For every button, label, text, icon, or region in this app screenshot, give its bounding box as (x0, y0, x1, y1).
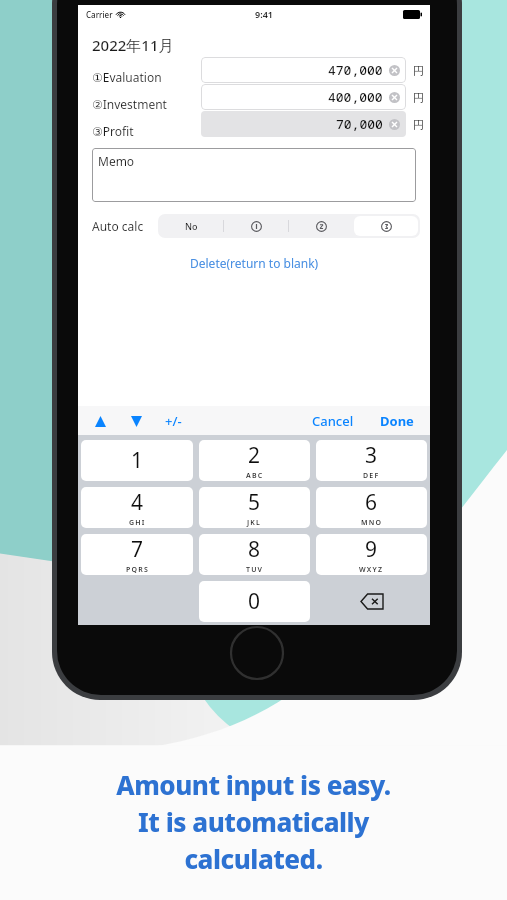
staticText: No (185, 220, 198, 232)
staticText: 円 (413, 64, 424, 78)
button[interactable]: Auto calc option 1 (224, 216, 288, 236)
button[interactable]: Previous field (90, 411, 110, 431)
staticText: 円 (413, 118, 424, 132)
button[interactable]: Home (229, 625, 285, 681)
staticText: DEF (363, 471, 380, 481)
button[interactable]: Delete(return to blank) (182, 252, 327, 274)
staticText: Delete(return to blank) (190, 255, 319, 271)
button[interactable]: Clear (389, 119, 400, 130)
staticText: 2022年11月 (92, 35, 174, 55)
button[interactable]: Memo (92, 148, 416, 202)
staticText: calculated. (184, 841, 323, 876)
staticText: 5 (248, 488, 261, 517)
staticText: 8 (248, 535, 261, 564)
button[interactable]: 9 (316, 534, 427, 575)
button[interactable]: Auto calc option 3 (354, 216, 418, 236)
button[interactable]: Done (376, 412, 418, 430)
staticText: ③Profit (92, 123, 134, 139)
staticText: 0 (248, 587, 261, 616)
staticText: ABC (246, 471, 264, 481)
button[interactable]: 7 (81, 534, 193, 575)
staticText: ①Evaluation (92, 69, 162, 85)
staticText: TUV (246, 565, 264, 575)
staticText: Amount input is easy. (116, 767, 391, 802)
button[interactable]: 400,000 (201, 84, 406, 110)
staticText: +/- (165, 412, 182, 430)
staticText: 9:41 (255, 8, 273, 20)
staticText: 400,000 (328, 88, 383, 106)
staticText: 7 (131, 535, 144, 564)
staticText: 4 (131, 488, 144, 517)
button[interactable]: 8 (199, 534, 310, 575)
staticText: WXYZ (359, 565, 384, 575)
button[interactable]: 2 (199, 440, 310, 481)
button[interactable]: Delete (313, 578, 430, 625)
button[interactable]: 4 (81, 487, 193, 528)
staticText: GHI (129, 518, 146, 528)
staticText: 2 (248, 441, 261, 470)
staticText: 70,000 (336, 115, 383, 133)
button[interactable]: 470,000 (201, 57, 406, 83)
staticText: MNO (361, 518, 383, 528)
button[interactable]: Cancel (308, 412, 358, 430)
staticText: 9 (365, 535, 378, 564)
staticText: 6 (365, 488, 378, 517)
button[interactable]: 70,000 (201, 111, 406, 137)
button[interactable]: 3 (316, 440, 427, 481)
button[interactable]: Next field (126, 411, 146, 431)
button[interactable]: Clear (389, 92, 400, 103)
button[interactable]: 1 (81, 440, 193, 481)
button[interactable]: Clear (389, 65, 400, 76)
staticText: PQRS (126, 565, 149, 575)
button[interactable]: 6 (316, 487, 427, 528)
button[interactable]: 5 (199, 487, 310, 528)
staticText: Auto calc (92, 218, 144, 234)
staticText: 3 (365, 441, 378, 470)
staticText: 円 (413, 91, 424, 105)
staticText: 470,000 (328, 61, 383, 79)
staticText: It is automatically (138, 804, 369, 839)
button[interactable]: Auto calc option 2 (289, 216, 353, 236)
staticText: ②Investment (92, 96, 167, 112)
staticText: JKL (247, 518, 262, 528)
button[interactable]: 0 (199, 581, 310, 622)
button[interactable]: No (160, 216, 223, 236)
staticText: Memo (98, 153, 135, 169)
button[interactable]: +/- (162, 412, 185, 430)
staticText: 1 (131, 446, 144, 475)
staticText: Carrier (86, 9, 113, 20)
staticText: Done (380, 412, 414, 430)
staticText: Cancel (312, 412, 354, 430)
